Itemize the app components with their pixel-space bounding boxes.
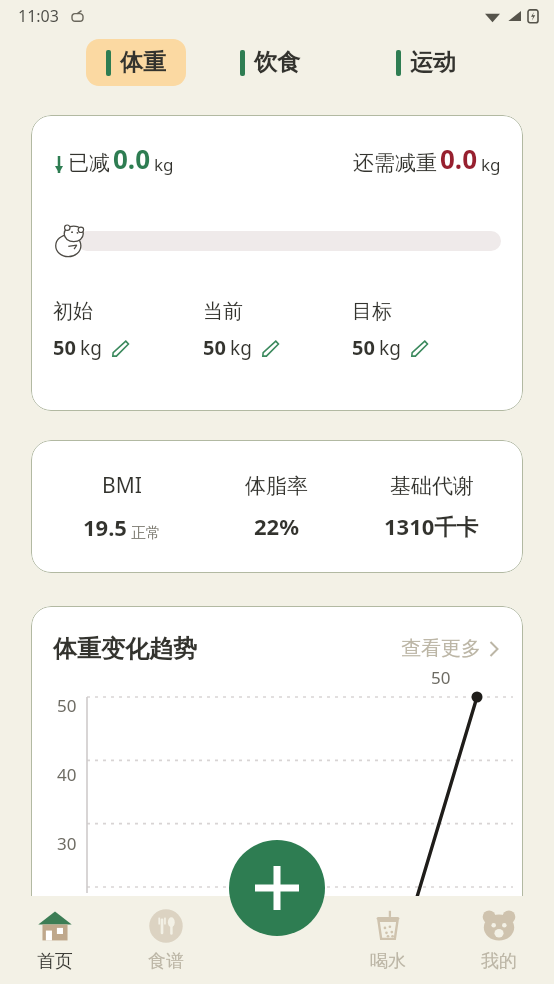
button[interactable]: 目标 bbox=[352, 299, 501, 361]
button[interactable]: 食谱 bbox=[110, 896, 221, 984]
staticText: 1310千卡 bbox=[384, 511, 479, 541]
staticText: 目标 bbox=[352, 299, 392, 324]
staticText: kg bbox=[154, 153, 174, 176]
button[interactable]: 体脂率 bbox=[199, 473, 354, 541]
staticText: kg bbox=[80, 335, 102, 361]
button[interactable]: 初始 bbox=[53, 299, 203, 361]
staticText: 首页 bbox=[37, 950, 73, 973]
staticText: kg bbox=[230, 335, 252, 361]
staticText: kg bbox=[481, 153, 501, 176]
staticText: 还需减重 bbox=[353, 150, 437, 176]
other: Edit 初始 bbox=[111, 339, 129, 357]
staticText: 22% bbox=[254, 511, 300, 541]
staticText: 19.5 bbox=[83, 512, 127, 542]
staticText: 体重变化趋势 bbox=[53, 634, 197, 664]
button[interactable]: 首页 bbox=[0, 896, 110, 984]
staticText: 初始 bbox=[53, 299, 93, 324]
staticText: 0.0 bbox=[113, 141, 151, 176]
staticText: 食谱 bbox=[148, 950, 184, 973]
staticText: 50 bbox=[53, 334, 76, 361]
staticText: 已减 bbox=[68, 150, 110, 176]
staticText: 0.0 bbox=[440, 141, 478, 176]
staticText: 查看更多 bbox=[401, 636, 481, 661]
staticText: 体脂率 bbox=[245, 473, 308, 499]
button[interactable]: 我的 bbox=[443, 896, 554, 984]
other: Edit 当前 bbox=[261, 339, 279, 357]
staticText: 喝水 bbox=[370, 950, 406, 973]
staticText: 40 bbox=[57, 763, 77, 786]
staticText: 正常 bbox=[127, 522, 161, 542]
staticText: 50 bbox=[57, 694, 77, 717]
staticText: BMI bbox=[102, 471, 142, 500]
other: Edit 目标 bbox=[410, 339, 428, 357]
button[interactable]: BMI bbox=[45, 471, 199, 542]
button[interactable]: 体重 bbox=[86, 39, 186, 86]
button[interactable]: 当前 bbox=[203, 299, 352, 361]
button[interactable]: 喝水 bbox=[332, 896, 443, 984]
staticText: 基础代谢 bbox=[390, 473, 474, 499]
button[interactable]: 查看更多 bbox=[397, 632, 505, 665]
staticText: 当前 bbox=[203, 299, 243, 324]
staticText: 50 bbox=[431, 666, 451, 689]
button[interactable]: Add record bbox=[229, 840, 325, 936]
staticText: 运动 bbox=[410, 48, 456, 77]
staticText: 11:03 bbox=[18, 5, 59, 27]
staticText: 体重 bbox=[120, 48, 166, 77]
staticText: 饮食 bbox=[254, 48, 300, 77]
staticText: kg bbox=[379, 335, 401, 361]
button[interactable]: 基础代谢 bbox=[354, 473, 509, 541]
staticText: 30 bbox=[57, 832, 77, 855]
staticText: 我的 bbox=[481, 950, 517, 973]
staticText: 50 bbox=[352, 334, 375, 361]
button[interactable]: 运动 bbox=[376, 39, 476, 86]
staticText: 50 bbox=[203, 334, 226, 361]
button[interactable]: 饮食 bbox=[220, 39, 320, 86]
